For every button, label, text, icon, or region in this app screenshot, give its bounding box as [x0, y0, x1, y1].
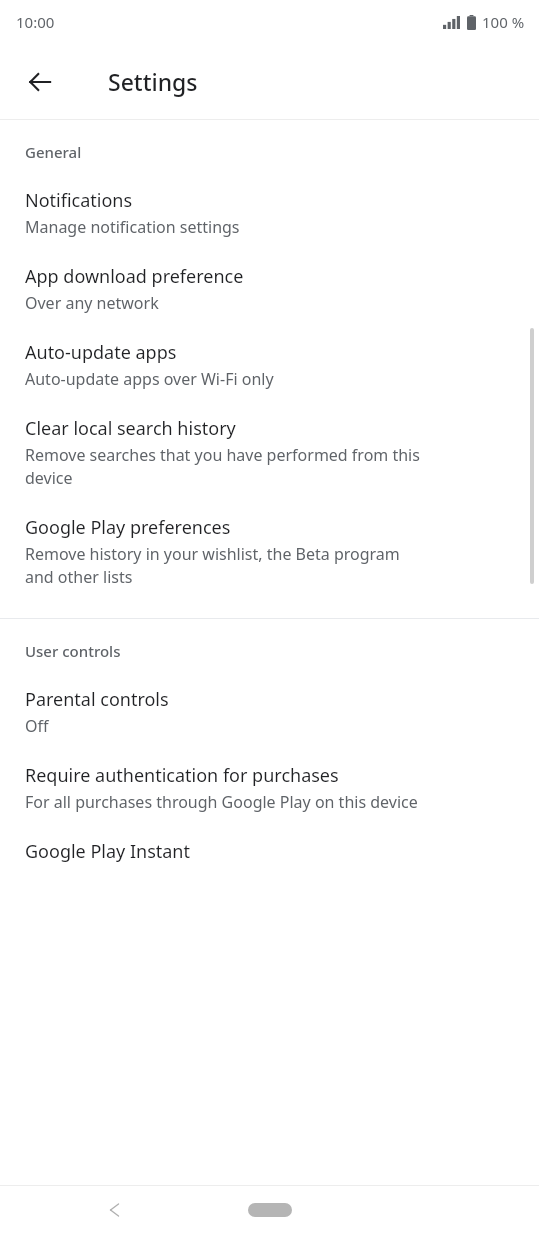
staticText: Parental controls	[25, 687, 169, 712]
button[interactable]: Back	[91, 1186, 139, 1234]
button[interactable]: Home	[248, 1203, 292, 1217]
staticText: Auto-update apps	[25, 340, 177, 365]
staticText: Remove history in your wishlist, the Bet…	[25, 543, 400, 588]
staticText: Settings	[108, 66, 198, 97]
button[interactable]: Parental controls	[0, 661, 539, 737]
staticText: Manage notification settings	[25, 216, 240, 238]
staticText: Google Play preferences	[25, 515, 231, 540]
staticText: 100 %	[482, 12, 525, 32]
staticText: Remove searches that you have performed …	[25, 444, 420, 489]
button[interactable]: Back	[16, 58, 64, 106]
staticText: Off	[25, 715, 49, 737]
staticText: Require authentication for purchases	[25, 763, 339, 788]
staticText: Clear local search history	[25, 416, 236, 441]
staticText: 10:00	[16, 12, 55, 32]
button[interactable]: Require authentication for purchases	[0, 737, 539, 813]
button[interactable]: Auto-update apps	[0, 314, 539, 390]
button[interactable]: Google Play preferences	[0, 489, 539, 588]
staticText: For all purchases through Google Play on…	[25, 791, 418, 813]
staticText: General	[25, 142, 82, 162]
staticText: Auto-update apps over Wi-Fi only	[25, 368, 274, 390]
staticText: App download preference	[25, 264, 244, 289]
button[interactable]: App download preference	[0, 238, 539, 314]
button[interactable]: Clear local search history	[0, 390, 539, 489]
button[interactable]: Notifications	[0, 162, 539, 238]
staticText: Over any network	[25, 292, 159, 314]
staticText: Notifications	[25, 188, 133, 213]
staticText: User controls	[25, 641, 121, 661]
button[interactable]: Google Play Instant	[0, 813, 539, 864]
staticText: Google Play Instant	[25, 839, 190, 864]
